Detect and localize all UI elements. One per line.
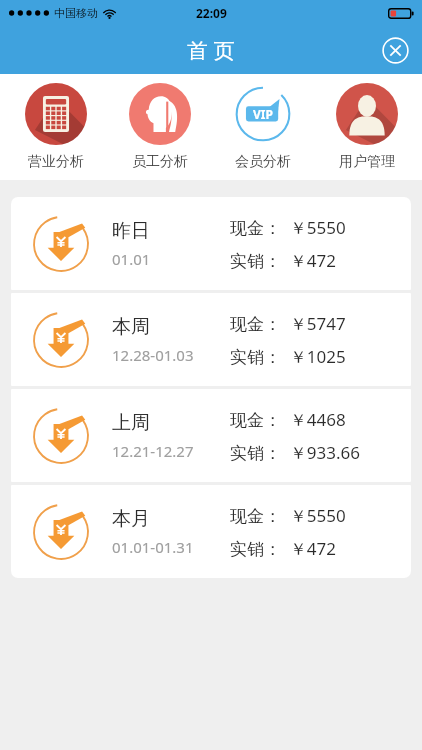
button[interactable]: 员工分析 (111, 81, 208, 173)
staticText: 实销： ￥933.66 (230, 441, 361, 464)
staticText: 现金： ￥5550 (230, 504, 346, 527)
button[interactable]: 营业分析 (7, 81, 104, 173)
staticText: 实销： ￥472 (230, 249, 337, 272)
button[interactable]: 用户管理 (318, 81, 415, 173)
button[interactable]: Close (377, 32, 413, 68)
staticText: 现金： ￥5550 (230, 216, 346, 239)
button[interactable]: VIP (214, 81, 311, 173)
staticText: 实销： ￥472 (230, 537, 337, 560)
staticText: 本周 (112, 315, 150, 339)
button[interactable]: 本周 (11, 293, 411, 386)
staticText: 会员分析 (235, 153, 291, 171)
staticText: 首 页 (187, 36, 235, 65)
staticText: 昨日 (112, 219, 150, 243)
staticText: 本月 (112, 507, 150, 531)
staticText: 实销： ￥1025 (230, 345, 346, 368)
staticText: VIP (253, 106, 273, 122)
staticText: 01.01-01.31 (112, 537, 194, 557)
staticText: 12.28-01.03 (112, 345, 194, 365)
staticText: 22:09 (196, 5, 227, 21)
staticText: 员工分析 (132, 153, 188, 171)
staticText: 12.21-12.27 (112, 441, 194, 461)
button[interactable]: 上周 (11, 389, 411, 482)
staticText: 营业分析 (28, 153, 84, 171)
staticText: 现金： ￥5747 (230, 312, 346, 335)
staticText: 上周 (112, 411, 150, 435)
staticText: 用户管理 (339, 153, 395, 171)
button[interactable]: 本月 (11, 485, 411, 578)
staticText: 现金： ￥4468 (230, 408, 346, 431)
staticText: 01.01 (112, 249, 151, 269)
staticText: 中国移动 (54, 6, 98, 20)
button[interactable]: 昨日 (11, 197, 411, 290)
